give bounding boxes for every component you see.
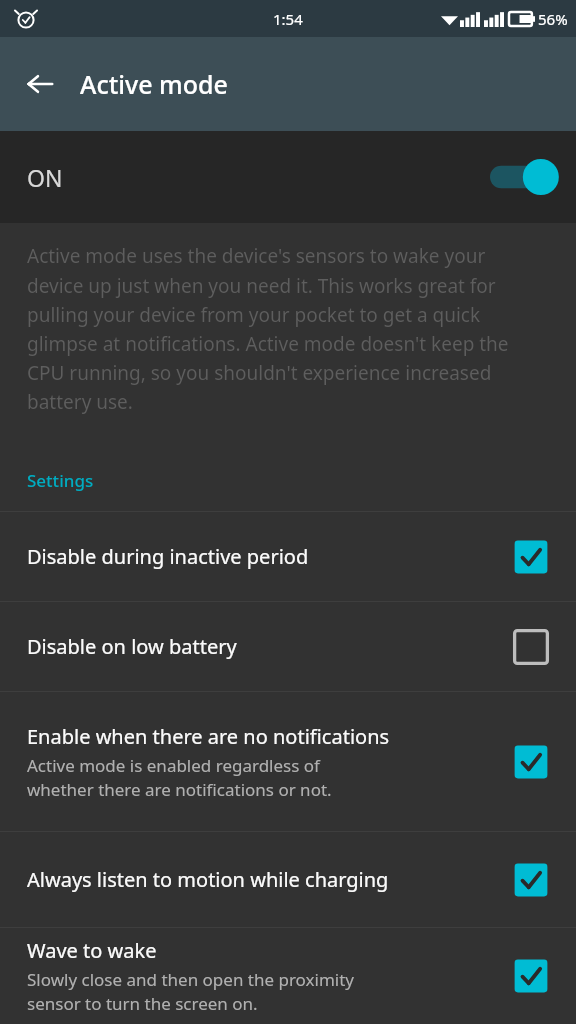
button[interactable]: Back <box>12 56 68 112</box>
staticText: Slowly close and then open the proximity… <box>27 968 355 1015</box>
staticText: Disable during inactive period <box>27 543 309 570</box>
staticText: Settings <box>27 469 94 492</box>
button[interactable]: Disable during inactive period <box>0 512 576 601</box>
button[interactable]: Wave to wake <box>0 928 576 1024</box>
staticText: Disable on low battery <box>27 633 237 660</box>
staticText: Active mode <box>80 67 228 101</box>
staticText: Enable when there are no notifications <box>27 723 390 750</box>
button[interactable]: Disable on low battery <box>0 602 576 691</box>
staticText: 56% <box>538 9 568 29</box>
button[interactable]: Unchecked <box>513 629 549 665</box>
button[interactable]: Always listen to motion while charging <box>0 832 576 927</box>
staticText: Active mode uses the device's sensors to… <box>27 243 546 414</box>
button[interactable]: Enable when there are no notifications <box>0 692 576 831</box>
staticText: Always listen to motion while charging <box>27 866 389 893</box>
button[interactable]: ON <box>0 131 576 223</box>
button[interactable]: Checked <box>513 744 549 780</box>
button[interactable]: Checked <box>513 539 549 575</box>
staticText: ON <box>27 162 63 193</box>
button[interactable]: Checked <box>513 862 549 898</box>
staticText: Wave to wake <box>27 937 157 964</box>
staticText: Active mode is enabled regardless of whe… <box>27 754 332 801</box>
button[interactable]: Checked <box>513 958 549 994</box>
staticText: 1:54 <box>273 9 303 29</box>
